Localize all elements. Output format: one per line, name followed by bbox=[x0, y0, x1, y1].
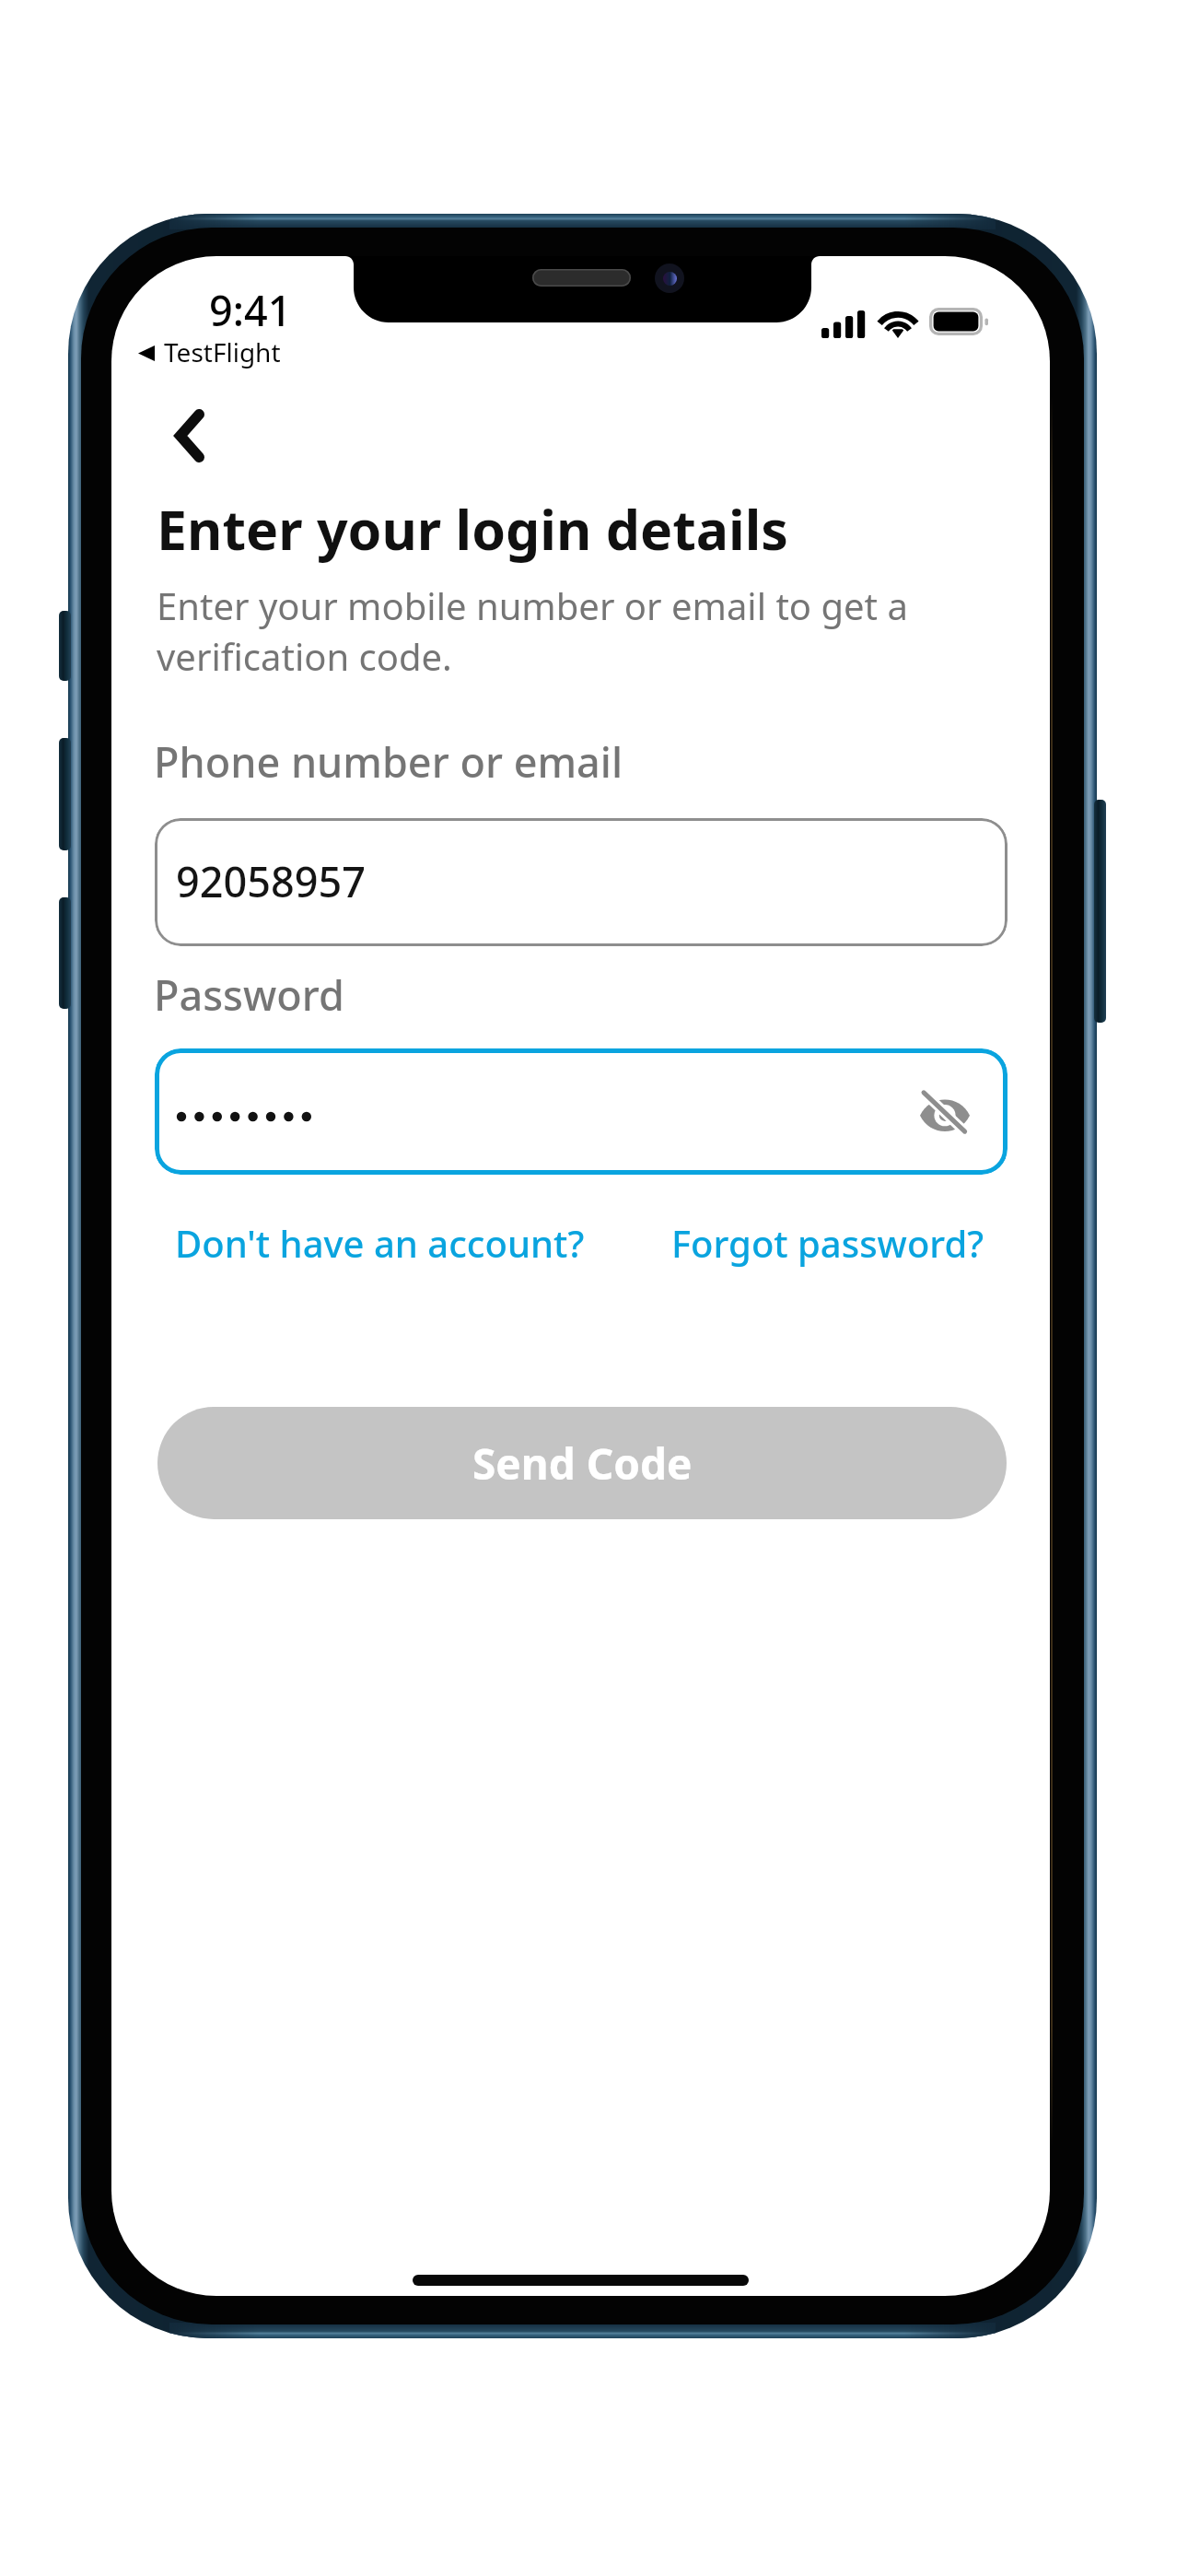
button[interactable]: Back bbox=[139, 394, 239, 483]
staticText: 92058957 bbox=[176, 853, 366, 909]
staticText: 9:41 bbox=[209, 282, 292, 338]
staticText: Send Code bbox=[472, 1434, 693, 1493]
button[interactable]: Send Code bbox=[157, 1407, 1007, 1519]
button[interactable]: 92058957 bbox=[155, 818, 1007, 946]
button[interactable]: Don't have an account? bbox=[175, 1218, 585, 1268]
button[interactable]: Show password bbox=[155, 1048, 1007, 1175]
staticText: Forgot password? bbox=[671, 1218, 984, 1268]
button[interactable]: Show password bbox=[901, 1068, 989, 1156]
staticText: TestFlight bbox=[164, 334, 281, 369]
staticText: Password bbox=[154, 966, 344, 1023]
staticText: Phone number or email bbox=[154, 733, 623, 790]
staticText: Don't have an account? bbox=[175, 1218, 585, 1268]
staticText: Enter your login details bbox=[157, 492, 788, 566]
staticText: Enter your mobile number or email to get… bbox=[157, 580, 949, 682]
button[interactable]: Forgot password? bbox=[671, 1218, 984, 1268]
